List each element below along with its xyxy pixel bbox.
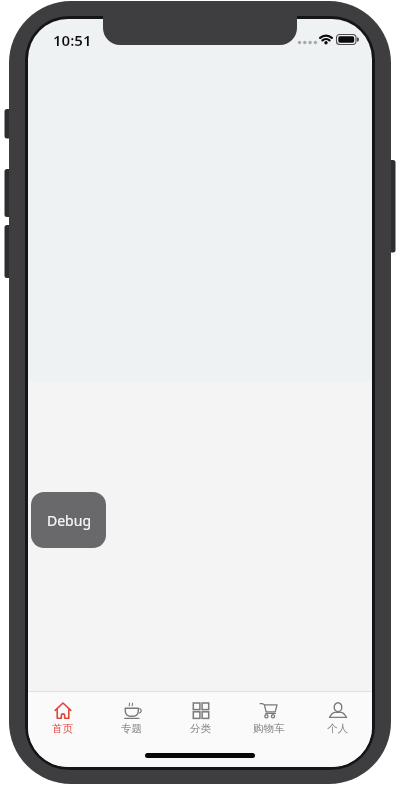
button[interactable]: 分类 [166,701,235,761]
staticText: 分类 [190,722,211,735]
staticText: 专题 [121,722,142,735]
button[interactable]: Debug [31,492,106,548]
staticText: 首页 [52,722,73,735]
staticText: 10:51 [53,30,92,50]
staticText: Debug [47,511,91,530]
button[interactable]: 专题 [97,701,166,761]
staticText: 购物车 [253,722,285,735]
button[interactable]: 首页 [28,701,97,761]
button[interactable]: 购物车 [234,701,303,761]
staticText: 个人 [327,722,348,735]
button[interactable]: 个人 [303,701,372,761]
